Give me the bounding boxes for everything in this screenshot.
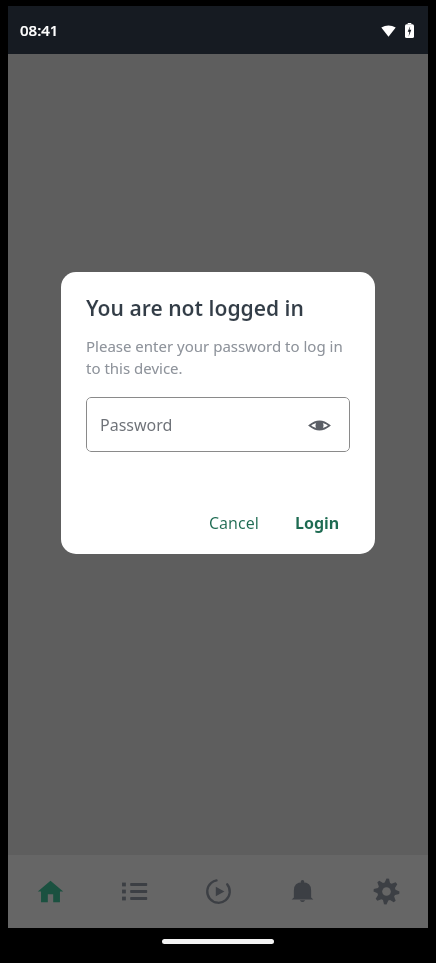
button[interactable]: Show password xyxy=(302,408,336,442)
button[interactable]: Playback xyxy=(176,855,260,928)
button[interactable]: Notifications xyxy=(260,855,344,928)
staticText: Please enter your password to log in to … xyxy=(86,336,350,379)
button[interactable]: Home xyxy=(8,855,92,928)
staticText: You are not logged in xyxy=(86,294,304,323)
staticText: Password xyxy=(100,414,173,436)
button[interactable]: Settings xyxy=(344,855,428,928)
staticText: Login xyxy=(295,512,340,534)
button[interactable]: Login xyxy=(285,506,350,540)
staticText: Cancel xyxy=(209,512,259,534)
button[interactable]: Password xyxy=(86,397,350,452)
button[interactable]: Cancel xyxy=(199,506,269,540)
button[interactable]: List xyxy=(92,855,176,928)
staticText: 08:41 xyxy=(20,20,59,40)
